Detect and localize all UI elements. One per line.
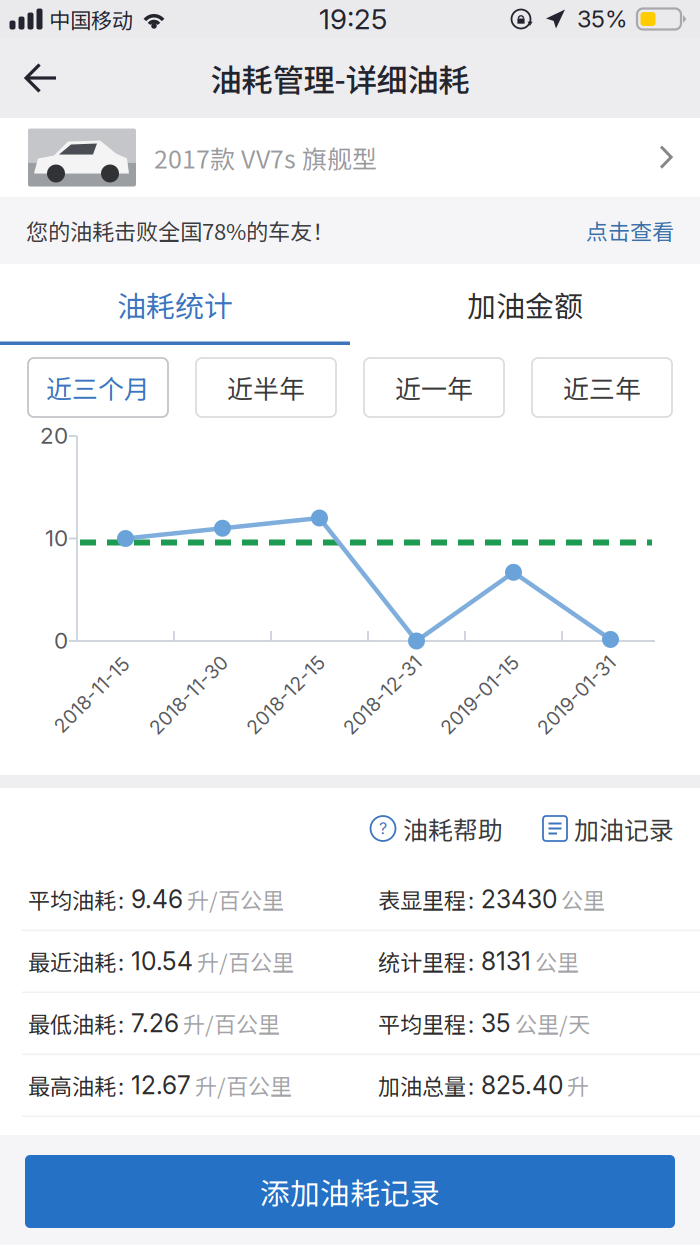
staticText: : — [118, 1069, 124, 1101]
staticText: 2018-12-31 — [331, 683, 433, 707]
staticText: 2019-01-31 — [525, 683, 627, 707]
button[interactable]: 近一年 — [364, 358, 504, 417]
staticText: : — [118, 945, 124, 977]
staticText: 825.40 — [481, 1070, 563, 1100]
staticText: : — [468, 1069, 474, 1101]
staticText: 8131 — [481, 946, 531, 976]
staticText: 近一年 — [395, 369, 473, 406]
staticText: 点击查看 — [586, 214, 674, 246]
staticText: 2017款 VV7s 旗舰型 — [154, 139, 377, 176]
staticText: 最近油耗 — [28, 945, 116, 977]
button[interactable]: 近三年 — [532, 358, 672, 417]
staticText: 23430 — [481, 884, 557, 914]
button[interactable]: 油耗统计 — [0, 264, 350, 345]
staticText: : — [468, 1007, 474, 1039]
button[interactable]: 2017款 VV7s 旗舰型 — [0, 118, 700, 197]
staticText: 2019-01-15 — [429, 683, 530, 707]
staticText: 0 — [54, 627, 68, 654]
staticText: 19:25 — [319, 2, 387, 36]
staticText: 公里 — [561, 883, 605, 915]
staticText: 添加油耗记录 — [260, 1170, 440, 1213]
staticText: 9.46 — [131, 884, 183, 914]
staticText: 油耗帮助 — [403, 810, 503, 847]
staticText: 油耗统计 — [117, 284, 233, 325]
button[interactable]: 添加油耗记录 — [25, 1155, 675, 1228]
staticText: 7.26 — [131, 1008, 179, 1038]
staticText: 加油金额 — [467, 284, 583, 325]
staticText: 升/百公里 — [195, 1069, 292, 1101]
staticText: 2018-12-15 — [235, 683, 336, 707]
staticText: 升/百公里 — [183, 1007, 280, 1039]
staticText: 公里/天 — [515, 1007, 590, 1039]
staticText: 10.54 — [131, 946, 193, 976]
staticText: 您的油耗击败全国78%的车友！ — [26, 214, 334, 246]
staticText: 油耗管理-详细油耗 — [210, 55, 469, 101]
staticText: : — [118, 1007, 124, 1039]
staticText: 20 — [40, 422, 68, 449]
staticText: 12.67 — [131, 1070, 191, 1100]
button[interactable]: 近半年 — [196, 358, 336, 417]
staticText: 升 — [567, 1069, 589, 1101]
button[interactable]: ? — [370, 810, 503, 847]
button[interactable]: Back — [0, 38, 80, 118]
button[interactable]: 近三个月 — [28, 358, 168, 417]
staticText: 最低油耗 — [28, 1007, 116, 1039]
staticText: 近三个月 — [46, 369, 150, 406]
button[interactable]: 点击查看 — [586, 214, 700, 246]
staticText: 35% — [577, 5, 628, 33]
button[interactable]: 加油金额 — [350, 264, 700, 345]
staticText: : — [468, 883, 474, 915]
staticText: 近三年 — [563, 369, 641, 406]
staticText: 表显里程 — [378, 883, 466, 915]
staticText: 统计里程 — [378, 945, 466, 977]
staticText: 10 — [45, 524, 68, 552]
staticText: 35 — [481, 1008, 511, 1038]
staticText: 中国移动 — [49, 4, 133, 34]
staticText: 升/百公里 — [197, 945, 294, 977]
staticText: : — [118, 883, 124, 915]
staticText: 平均里程 — [378, 1007, 466, 1039]
staticText: 公里 — [535, 945, 579, 977]
staticText: 升/百公里 — [187, 883, 284, 915]
staticText: 2018-11-15 — [43, 683, 140, 707]
staticText: 近半年 — [227, 369, 305, 406]
staticText: 2018-11-30 — [137, 683, 239, 707]
staticText: : — [468, 945, 474, 977]
staticText: 加油总量 — [378, 1069, 466, 1101]
button[interactable]: 加油记录 — [543, 810, 674, 847]
staticText: 加油记录 — [574, 810, 674, 847]
staticText: 平均油耗 — [28, 883, 116, 915]
staticText: 最高油耗 — [28, 1069, 116, 1101]
staticText: ? — [379, 819, 387, 838]
